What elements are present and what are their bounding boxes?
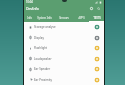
button[interactable]: Flashlight bbox=[24, 43, 104, 53]
button[interactable]: Info bbox=[24, 13, 34, 22]
staticText: DevInfo bbox=[26, 6, 39, 11]
button[interactable]: Sensors bbox=[54, 13, 73, 22]
staticText: Ear Speaker bbox=[34, 67, 51, 71]
button[interactable]: Display bbox=[24, 32, 104, 43]
button[interactable]: APPS bbox=[73, 13, 89, 22]
button[interactable]: System Info bbox=[34, 13, 54, 22]
staticText: Loudspeaker bbox=[34, 57, 52, 61]
staticText: System Info bbox=[37, 16, 52, 20]
staticText: Flashlight bbox=[34, 46, 48, 50]
button[interactable]: Storage analyse bbox=[24, 22, 104, 32]
staticText: Info bbox=[27, 16, 32, 20]
button[interactable]: Ear Proximity bbox=[24, 74, 104, 85]
button[interactable]: Settings bbox=[88, 5, 95, 12]
staticText: APPS bbox=[78, 16, 85, 20]
button[interactable]: More options bbox=[95, 5, 102, 12]
button[interactable]: Loudspeaker bbox=[24, 53, 104, 64]
staticText: Sensors bbox=[59, 16, 69, 20]
button[interactable]: TESTS bbox=[89, 13, 104, 22]
button[interactable]: Ear Speaker bbox=[24, 64, 104, 74]
staticText: 10:04 bbox=[26, 0, 33, 4]
staticText: TESTS bbox=[93, 16, 101, 20]
staticText: Display bbox=[34, 36, 44, 40]
staticText: Ear Proximity bbox=[34, 78, 52, 82]
staticText: Storage analyse bbox=[34, 25, 56, 29]
